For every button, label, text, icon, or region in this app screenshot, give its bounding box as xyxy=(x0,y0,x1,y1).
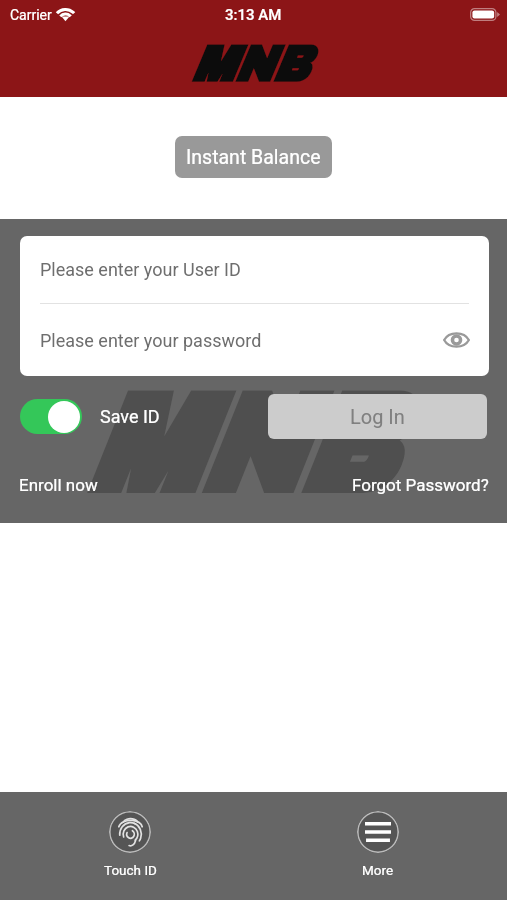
staticText: Please enter your password xyxy=(40,330,262,351)
button[interactable]: Please enter your password xyxy=(20,304,489,376)
button[interactable]: Save ID xyxy=(100,399,160,434)
staticText: 3:13 AM xyxy=(225,6,282,24)
staticText: Instant Balance xyxy=(186,146,321,169)
staticText: Enroll now xyxy=(19,475,98,495)
staticText: MNB xyxy=(190,38,308,91)
button[interactable]: Forgot Password? xyxy=(352,475,489,495)
button[interactable]: Log In xyxy=(268,394,487,439)
staticText: More xyxy=(362,862,394,878)
button[interactable]: Touch ID xyxy=(94,811,166,878)
staticText: Carrier xyxy=(10,7,52,23)
staticText: Log In xyxy=(350,405,405,428)
staticText: Please enter your User ID xyxy=(40,259,241,280)
button[interactable]: More xyxy=(342,811,414,878)
button[interactable]: Show password xyxy=(439,323,473,357)
button[interactable]: Enroll now xyxy=(19,475,98,495)
staticText: Touch ID xyxy=(104,862,157,878)
button[interactable]: Please enter your User ID xyxy=(20,236,489,303)
button[interactable]: Instant Balance xyxy=(175,136,332,178)
button[interactable]: Save ID toggle xyxy=(20,399,82,434)
staticText: Forgot Password? xyxy=(352,475,489,495)
staticText: MNB xyxy=(84,372,390,519)
staticText: Save ID xyxy=(100,406,160,427)
